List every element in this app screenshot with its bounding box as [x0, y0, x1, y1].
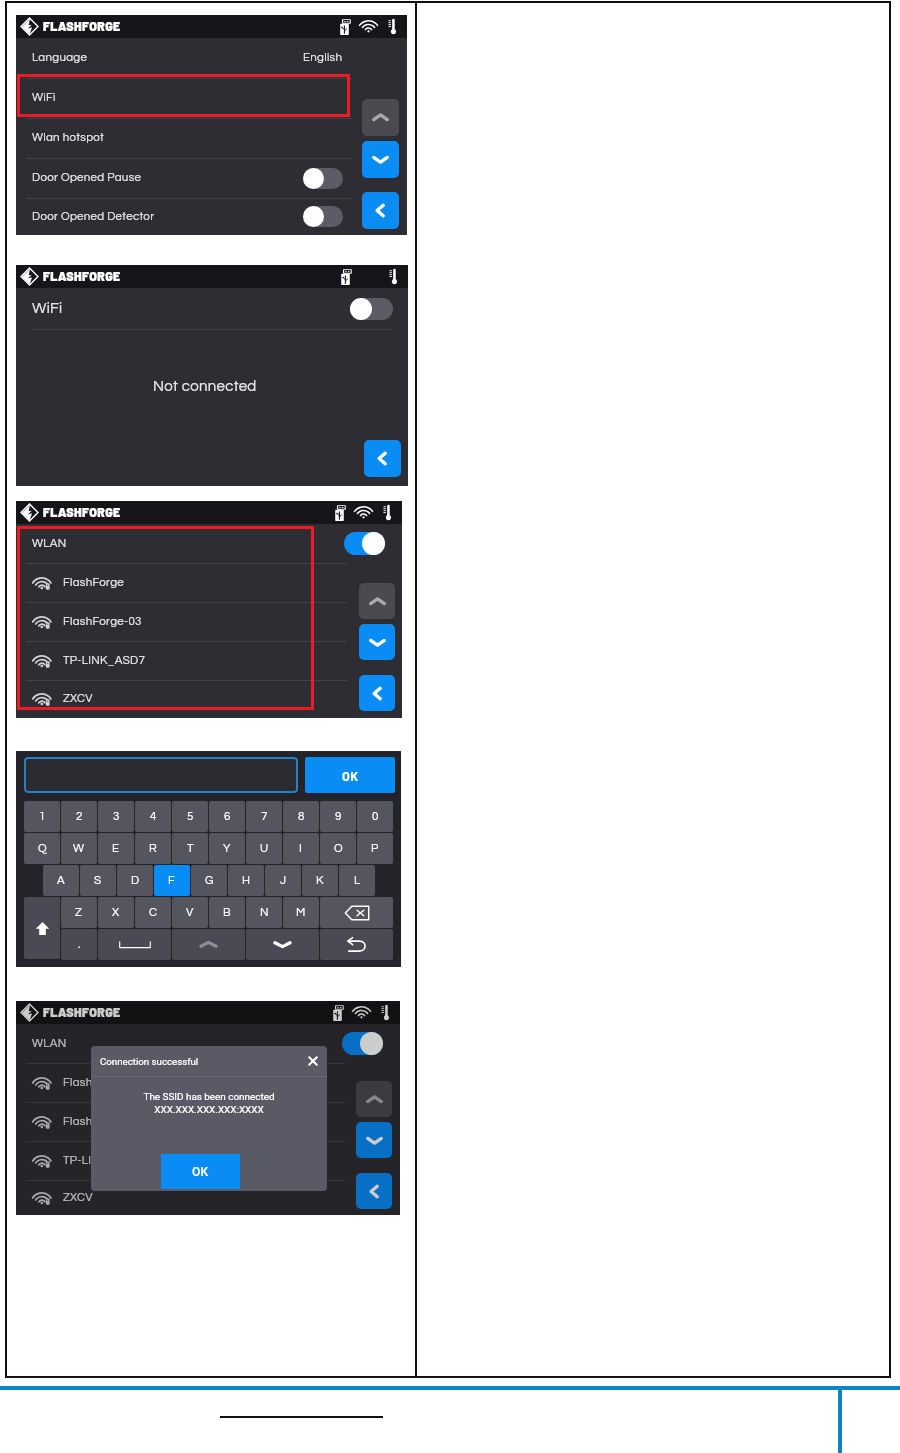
staticText: ZXCV: [63, 693, 93, 705]
button[interactable]: TP-LINK_ASD7: [16, 641, 402, 680]
button[interactable]: OK: [161, 1154, 240, 1189]
button[interactable]: Enter: [320, 929, 393, 960]
button[interactable]: Switch on: [342, 1032, 383, 1055]
staticText: FlashForge: [63, 1077, 125, 1089]
button[interactable]: WiFi: [16, 78, 407, 118]
staticText: XXX.XXX.XXX.XXX:XXXX: [91, 1104, 327, 1116]
button[interactable]: Scroll up: [172, 929, 245, 960]
button[interactable]: N: [246, 897, 282, 928]
button[interactable]: Switch off: [350, 298, 393, 320]
button[interactable]: M: [283, 897, 319, 928]
button[interactable]: R: [135, 833, 171, 864]
button[interactable]: Back: [359, 675, 395, 711]
button[interactable]: Scroll down: [359, 624, 395, 660]
button[interactable]: A: [43, 865, 79, 896]
staticText: 9: [335, 811, 342, 823]
staticText: K: [316, 875, 324, 887]
button[interactable]: Scroll up: [362, 99, 399, 136]
button[interactable]: J: [265, 865, 301, 896]
button[interactable]: Y: [209, 833, 245, 864]
button[interactable]: Switch off: [303, 168, 343, 189]
button[interactable]: Switch off: [303, 206, 343, 227]
button[interactable]: T: [172, 833, 208, 864]
staticText: The SSID has been connected: [91, 1091, 327, 1103]
staticText: 8: [298, 811, 305, 823]
button[interactable]: Space: [98, 929, 171, 960]
staticText: WiFi: [32, 301, 63, 316]
button[interactable]: V: [172, 897, 208, 928]
button[interactable]: Z: [61, 897, 97, 928]
staticText: D: [131, 875, 140, 887]
staticText: O: [334, 843, 343, 855]
button[interactable]: Scroll up: [359, 583, 395, 619]
staticText: A: [57, 875, 65, 887]
button[interactable]: B: [209, 897, 245, 928]
button[interactable]: E: [98, 833, 134, 864]
button[interactable]: ZXCV: [16, 680, 402, 718]
button[interactable]: .: [61, 929, 97, 960]
staticText: T: [187, 843, 194, 855]
button[interactable]: L: [339, 865, 375, 896]
button[interactable]: Shift: [24, 897, 60, 959]
button[interactable]: ZXCV: [16, 1180, 400, 1215]
button[interactable]: P: [357, 833, 393, 864]
button[interactable]: OK: [305, 757, 395, 793]
button[interactable]: I: [283, 833, 319, 864]
button[interactable]: Backspace: [320, 897, 393, 928]
button[interactable]: FlashForge: [16, 1063, 400, 1102]
button[interactable]: W: [61, 833, 97, 864]
button[interactable]: 1: [24, 801, 60, 832]
button[interactable]: U: [246, 833, 282, 864]
button[interactable]: Q: [24, 833, 60, 864]
button[interactable]: G: [191, 865, 227, 896]
button[interactable]: 6: [209, 801, 245, 832]
button[interactable]: FlashForge-03: [16, 602, 402, 641]
button[interactable]: Password input: [24, 757, 298, 793]
button[interactable]: F: [154, 865, 190, 896]
button[interactable]: TP-LINK_ASD7: [16, 1141, 400, 1180]
button[interactable]: Back: [364, 440, 401, 477]
staticText: I: [299, 843, 303, 855]
button[interactable]: K: [302, 865, 338, 896]
button[interactable]: WiFi: [16, 288, 408, 329]
button[interactable]: Scroll up: [356, 1081, 392, 1117]
button[interactable]: FlashForge: [16, 563, 402, 602]
button[interactable]: 9: [320, 801, 356, 832]
button[interactable]: 0: [357, 801, 393, 832]
button[interactable]: WLAN: [16, 524, 402, 563]
button[interactable]: Door Opened Pause: [16, 158, 407, 198]
staticText: 6: [224, 811, 231, 823]
button[interactable]: Language: [16, 38, 407, 78]
button[interactable]: 3: [98, 801, 134, 832]
button[interactable]: Close dialog: [308, 1056, 318, 1066]
button[interactable]: H: [228, 865, 264, 896]
button[interactable]: 8: [283, 801, 319, 832]
staticText: WLAN: [32, 538, 67, 550]
button[interactable]: O: [320, 833, 356, 864]
staticText: 4: [150, 811, 157, 823]
button[interactable]: Back: [362, 192, 399, 229]
button[interactable]: X: [98, 897, 134, 928]
button[interactable]: 2: [61, 801, 97, 832]
button[interactable]: Scroll down: [362, 141, 399, 178]
button[interactable]: Wlan hotspot: [16, 118, 407, 158]
button[interactable]: 7: [246, 801, 282, 832]
button[interactable]: D: [117, 865, 153, 896]
staticText: WLAN: [32, 1038, 67, 1050]
button[interactable]: Door Opened Detector: [16, 198, 407, 235]
button[interactable]: Scroll down: [356, 1122, 392, 1158]
staticText: C: [149, 907, 158, 919]
button[interactable]: 5: [172, 801, 208, 832]
staticText: FlashForge-03: [63, 616, 142, 628]
staticText: TP-LINK_ASD7: [63, 1155, 146, 1167]
button[interactable]: Scroll down: [246, 929, 319, 960]
staticText: J: [280, 875, 287, 887]
button[interactable]: WLAN: [16, 1024, 400, 1063]
button[interactable]: FlashForge-03: [16, 1102, 400, 1141]
button[interactable]: Back: [356, 1173, 392, 1209]
button[interactable]: Switch on: [344, 532, 385, 555]
button[interactable]: S: [80, 865, 116, 896]
staticText: Not connected: [153, 379, 257, 394]
button[interactable]: C: [135, 897, 171, 928]
button[interactable]: 4: [135, 801, 171, 832]
